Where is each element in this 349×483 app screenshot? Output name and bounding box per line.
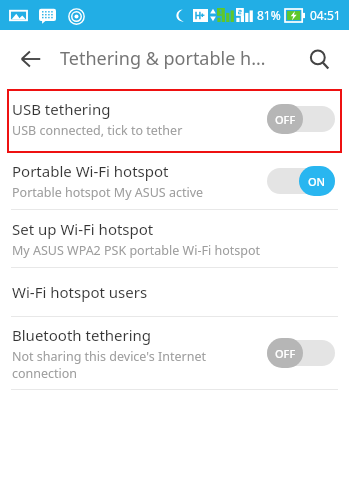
staticText: Wi-Fi hotspot users — [12, 282, 148, 302]
button[interactable]: Search — [303, 43, 335, 75]
button[interactable]: Switch off — [267, 104, 335, 134]
staticText: My ASUS WPA2 PSK portable Wi-Fi hotspot — [12, 242, 260, 259]
staticText: Portable Wi-Fi hotspot — [12, 161, 169, 181]
button[interactable]: USB tethering — [0, 87, 349, 151]
staticText: OFF — [275, 346, 296, 361]
button[interactable]: Back — [14, 42, 48, 76]
staticText: ON — [308, 174, 326, 189]
button[interactable]: Set up Wi-Fi hotspot — [0, 210, 349, 267]
staticText: Tethering & portable h… — [60, 46, 297, 71]
staticText: USB tethering — [12, 99, 111, 119]
staticText: Set up Wi-Fi hotspot — [12, 219, 154, 239]
staticText: OFF — [275, 112, 296, 127]
staticText: 04:51 — [310, 7, 341, 23]
button[interactable]: Bluetooth tethering — [0, 317, 349, 389]
button[interactable]: Switch on — [267, 166, 335, 196]
staticText: Not sharing this device's Internet conne… — [12, 348, 259, 382]
button[interactable]: Portable Wi-Fi hotspot — [0, 152, 349, 209]
button[interactable]: Wi-Fi hotspot users — [0, 268, 349, 316]
staticText: Bluetooth tethering — [12, 325, 152, 345]
staticText: USB connected, tick to tether — [12, 122, 183, 139]
staticText: 81% — [257, 7, 281, 23]
staticText: Portable hotspot My ASUS active — [12, 184, 204, 201]
button[interactable]: Switch off — [267, 338, 335, 368]
